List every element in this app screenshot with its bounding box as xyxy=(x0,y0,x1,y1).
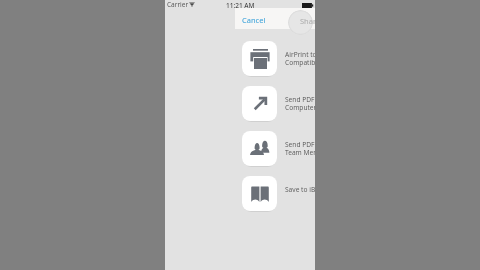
button[interactable]: Save to iBooks xyxy=(242,176,315,211)
staticText: 11:21 AM xyxy=(226,1,255,10)
button[interactable]: Send PDF to Computer xyxy=(242,86,315,121)
button[interactable]: Cancel xyxy=(239,13,269,27)
button[interactable]: AirPrint xyxy=(242,41,315,76)
staticText: Save to iBooks xyxy=(285,186,315,202)
staticText: AirPrint to Compatible xyxy=(285,51,315,67)
staticText: Share xyxy=(300,16,315,26)
staticText: Cancel xyxy=(242,15,266,25)
staticText: Send PDF to Computer xyxy=(285,96,315,112)
staticText: Carrier xyxy=(167,0,189,9)
button[interactable]: Share xyxy=(288,10,313,35)
button[interactable]: Send PDF to Team Member xyxy=(242,131,315,166)
staticText: Send PDF to Team Member xyxy=(285,141,315,157)
